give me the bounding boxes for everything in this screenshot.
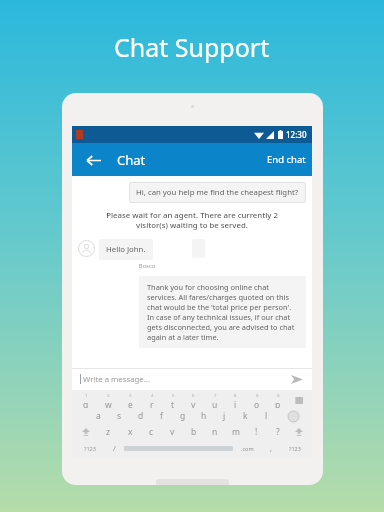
staticText: a: [96, 410, 101, 422]
staticText: Hi, can you help me find the cheapest fl…: [136, 187, 299, 198]
staticText: g: [180, 410, 186, 422]
button[interactable]: 3: [119, 393, 141, 408]
staticText: d: [138, 410, 144, 422]
button[interactable]: Space: [124, 443, 233, 453]
button[interactable]: l: [256, 408, 277, 424]
button[interactable]: ?: [267, 424, 288, 440]
staticText: v: [170, 426, 175, 438]
staticText: s: [117, 410, 122, 422]
staticText: e: [128, 399, 133, 408]
staticText: ?123: [289, 445, 301, 452]
staticText: .com: [241, 445, 254, 452]
button[interactable]: v: [162, 424, 183, 440]
staticText: Please wait for an agent. There are curr…: [94, 210, 290, 230]
button[interactable]: End chat: [267, 153, 306, 166]
staticText: 4: [151, 393, 154, 399]
staticText: k: [243, 410, 248, 422]
staticText: Hello John.: [106, 244, 146, 255]
button[interactable]: m: [225, 424, 246, 440]
button[interactable]: /: [104, 440, 124, 456]
staticText: Write a message...: [83, 374, 151, 385]
staticText: Chat: [117, 151, 146, 169]
staticText: 0: [277, 393, 280, 399]
button[interactable]: 1: [75, 393, 97, 408]
button[interactable]: g: [172, 408, 193, 424]
staticText: ?123: [84, 445, 96, 452]
button[interactable]: s: [109, 408, 130, 424]
button[interactable]: 2: [97, 393, 119, 408]
staticText: 3: [129, 393, 132, 399]
staticText: b: [191, 426, 197, 438]
staticText: ,: [270, 443, 273, 453]
button[interactable]: Shift: [75, 424, 97, 440]
staticText: i: [234, 399, 237, 408]
button[interactable]: 6: [183, 393, 204, 408]
staticText: n: [212, 426, 218, 438]
button[interactable]: 5: [162, 393, 183, 408]
staticText: f: [160, 410, 163, 422]
staticText: 1: [85, 393, 88, 399]
button[interactable]: ?123: [281, 440, 309, 456]
button[interactable]: ?123: [75, 440, 104, 456]
staticText: End chat: [267, 153, 306, 166]
staticText: u: [212, 399, 218, 408]
staticText: l: [265, 410, 268, 422]
staticText: j: [223, 410, 226, 422]
staticText: ?: [276, 426, 280, 438]
button[interactable]: 0: [267, 393, 288, 408]
button[interactable]: k: [235, 408, 256, 424]
staticText: c: [149, 426, 154, 438]
staticText: 5: [172, 393, 175, 399]
button[interactable]: .com: [233, 440, 261, 456]
button[interactable]: x: [119, 424, 141, 440]
staticText: q: [83, 399, 89, 408]
button[interactable]: j: [214, 408, 235, 424]
button[interactable]: z: [97, 424, 119, 440]
button[interactable]: n: [204, 424, 225, 440]
button[interactable]: 8: [225, 393, 246, 408]
staticText: Bosco: [99, 262, 195, 270]
staticText: Chat Support: [114, 30, 270, 64]
staticText: 7: [214, 393, 217, 399]
button[interactable]: Enter: [277, 408, 309, 424]
staticText: x: [128, 426, 133, 438]
staticText: 9: [256, 393, 259, 399]
button[interactable]: 7: [204, 393, 225, 408]
staticText: !: [255, 426, 258, 438]
staticText: o: [254, 399, 260, 408]
button[interactable]: !: [246, 424, 267, 440]
button[interactable]: h: [193, 408, 214, 424]
button[interactable]: 9: [246, 393, 267, 408]
staticText: 8: [234, 393, 237, 399]
staticText: m: [232, 426, 240, 438]
button[interactable]: f: [151, 408, 172, 424]
button[interactable]: ,: [261, 440, 281, 456]
staticText: 6: [192, 393, 195, 399]
button[interactable]: Shift: [288, 424, 309, 440]
staticText: r: [150, 399, 154, 408]
button[interactable]: Write a message...: [80, 368, 304, 390]
staticText: /: [113, 443, 116, 453]
button[interactable]: Hello John.: [106, 244, 146, 255]
staticText: y: [191, 399, 196, 408]
staticText: h: [201, 410, 207, 422]
button[interactable]: d: [130, 408, 151, 424]
button[interactable]: Hi, can you help me find the cheapest fl…: [136, 187, 299, 198]
button[interactable]: c: [141, 424, 162, 440]
button[interactable]: a: [87, 408, 109, 424]
button[interactable]: Back: [82, 149, 104, 171]
button[interactable]: Chat: [117, 151, 146, 169]
staticText: z: [106, 426, 110, 438]
staticText: w: [105, 399, 112, 408]
button[interactable]: Thank you for choosing online chat servi…: [147, 282, 298, 342]
staticText: p: [275, 399, 281, 408]
staticText: t: [171, 399, 175, 408]
staticText: 2: [107, 393, 110, 399]
button[interactable]: Backspace: [288, 393, 309, 408]
button[interactable]: 4: [141, 393, 162, 408]
staticText: Thank you for choosing online chat servi…: [147, 282, 298, 342]
button[interactable]: b: [183, 424, 204, 440]
button[interactable]: Send: [290, 372, 304, 386]
staticText: 12:30: [286, 129, 307, 140]
